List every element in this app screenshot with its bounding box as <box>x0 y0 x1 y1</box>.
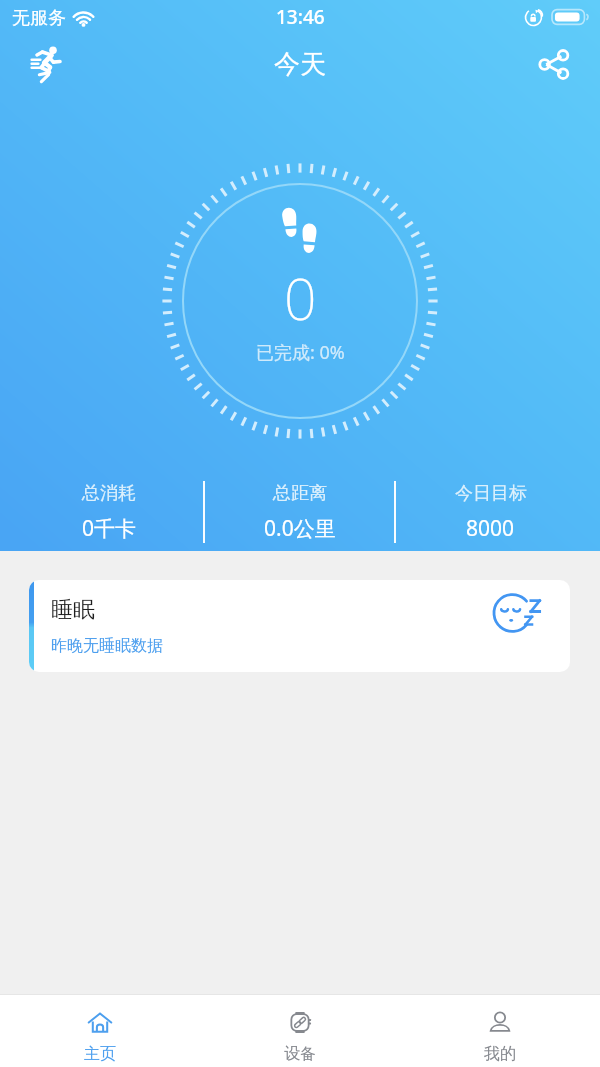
staticText: 睡眠 <box>51 596 95 624</box>
button[interactable]: Share <box>523 34 583 94</box>
button[interactable]: 设备 <box>200 995 400 1067</box>
staticText: 我的 <box>484 1044 516 1064</box>
staticText: 无服务 <box>12 7 66 30</box>
button[interactable]: 总消耗 <box>15 474 203 550</box>
button[interactable]: 今日目标 <box>396 474 585 550</box>
staticText: 设备 <box>284 1044 316 1064</box>
staticText: 主页 <box>84 1044 116 1064</box>
staticText: 8000 <box>466 514 515 543</box>
button[interactable]: 总距离 <box>205 474 394 550</box>
staticText: 13:46 <box>276 4 325 30</box>
staticText: 今天 <box>274 48 326 81</box>
staticText: 已完成: 0% <box>256 340 345 365</box>
staticText: 总距离 <box>273 482 327 505</box>
staticText: 0千卡 <box>82 514 137 543</box>
staticText: 0.0公里 <box>264 514 336 543</box>
button[interactable]: 睡眠 <box>29 580 570 672</box>
staticText: 昨晚无睡眠数据 <box>51 636 163 656</box>
staticText: 总消耗 <box>82 482 136 505</box>
staticText: 今日目标 <box>455 482 527 505</box>
button[interactable]: Exercise <box>18 34 78 94</box>
staticText: 0 <box>284 259 317 337</box>
button[interactable]: 我的 <box>400 995 600 1067</box>
button[interactable]: 主页 <box>0 995 200 1067</box>
